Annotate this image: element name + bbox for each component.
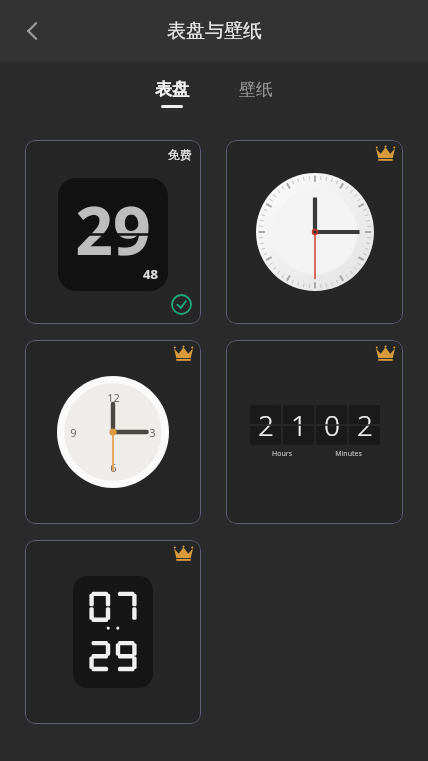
staticText: 1 xyxy=(291,406,307,444)
staticText: 0 xyxy=(324,406,340,444)
staticText: 6 xyxy=(110,460,117,475)
staticText: 表盘 xyxy=(155,79,189,100)
staticText: 2 xyxy=(357,406,373,444)
staticText: 29 xyxy=(75,184,151,274)
button[interactable]: Back xyxy=(10,7,58,55)
staticText: Hours xyxy=(272,449,292,459)
button[interactable]: 29 xyxy=(25,140,201,324)
button[interactable] xyxy=(226,140,403,324)
button[interactable]: 12 xyxy=(25,340,201,524)
button[interactable]: 2 xyxy=(226,340,403,524)
staticText: 48 xyxy=(143,265,158,283)
button[interactable] xyxy=(25,540,201,724)
staticText: 免费 xyxy=(168,147,192,162)
staticText: 3 xyxy=(149,425,156,440)
staticText: 表盘与壁纸 xyxy=(167,19,262,43)
staticText: 9 xyxy=(70,425,77,440)
button[interactable]: 表盘 xyxy=(145,79,199,108)
staticText: 12 xyxy=(107,390,120,405)
staticText: 壁纸 xyxy=(239,79,273,100)
staticText: 2 xyxy=(258,406,274,444)
staticText: Minutes xyxy=(335,449,362,459)
button[interactable]: 壁纸 xyxy=(229,79,283,108)
